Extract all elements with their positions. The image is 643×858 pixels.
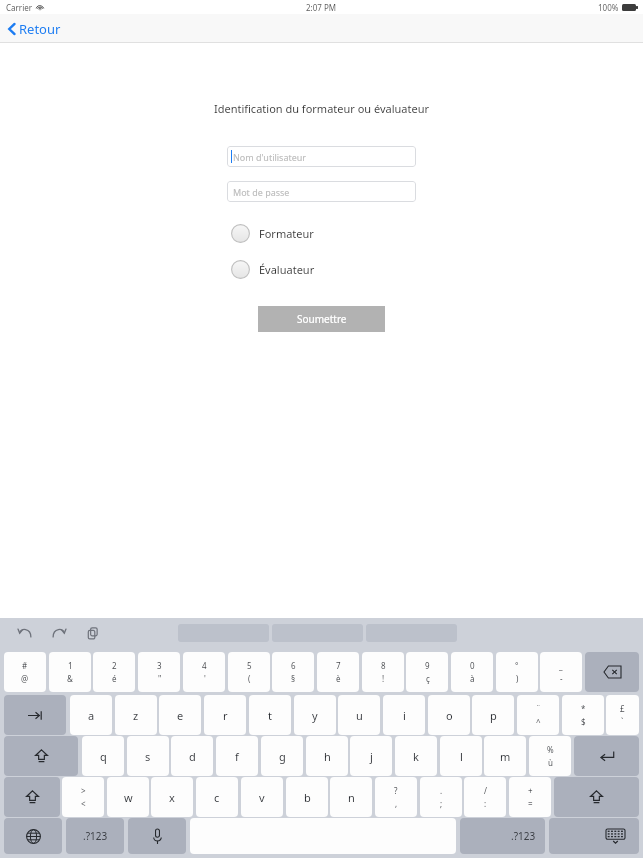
button[interactable]: Undo xyxy=(12,620,38,646)
staticText: + xyxy=(528,785,533,796)
button[interactable]: Hide keyboard xyxy=(549,818,639,854)
button[interactable]: Paste xyxy=(80,620,106,646)
button[interactable]: s xyxy=(127,736,169,776)
button[interactable]: * xyxy=(562,695,604,735)
staticText: i xyxy=(403,708,406,723)
button[interactable]: Tab xyxy=(4,695,66,735)
button[interactable]: 8 xyxy=(362,652,404,692)
button[interactable]: b xyxy=(286,777,328,817)
button[interactable]: 9 xyxy=(406,652,448,692)
button[interactable]: q xyxy=(82,736,124,776)
staticText: : xyxy=(484,798,487,809)
button[interactable]: k xyxy=(395,736,437,776)
button[interactable]: Backspace xyxy=(585,652,639,692)
button[interactable]: v xyxy=(241,777,283,817)
staticText: u xyxy=(356,708,363,723)
staticText: ` xyxy=(621,716,624,727)
staticText: é xyxy=(112,673,117,684)
button[interactable]: Shift xyxy=(4,736,78,776)
button[interactable]: Redo xyxy=(46,620,72,646)
button[interactable]: 0 xyxy=(451,652,493,692)
button[interactable]: ? xyxy=(375,777,417,817)
button[interactable]: ¨ xyxy=(517,695,559,735)
button[interactable]: j xyxy=(350,736,392,776)
staticText: * xyxy=(581,703,586,714)
button[interactable]: l xyxy=(440,736,482,776)
staticText: s xyxy=(145,749,151,764)
button[interactable]: Soumettre xyxy=(258,306,385,332)
staticText: ) xyxy=(516,673,519,684)
button[interactable]: Mot de passe xyxy=(227,181,416,202)
button[interactable]: 5 xyxy=(228,652,270,692)
button[interactable]: % xyxy=(529,736,571,776)
button[interactable]: r xyxy=(204,695,246,735)
button[interactable]: h xyxy=(306,736,348,776)
button[interactable]: Retour xyxy=(4,17,65,41)
staticText: - xyxy=(560,673,563,684)
staticText: n xyxy=(348,790,355,805)
staticText: 2 xyxy=(112,660,117,671)
button[interactable]: d xyxy=(171,736,213,776)
button[interactable]: 3 xyxy=(138,652,180,692)
staticText: ¨ xyxy=(536,703,541,714)
button[interactable]: Évaluateur xyxy=(231,258,315,280)
button[interactable]: Nom d'utilisateur xyxy=(227,146,416,167)
staticText: % xyxy=(547,744,554,755)
button[interactable]: Shift xyxy=(554,777,639,817)
button[interactable]: o xyxy=(428,695,470,735)
button[interactable]: 7 xyxy=(317,652,359,692)
button[interactable]: x xyxy=(151,777,193,817)
button[interactable]: + xyxy=(509,777,551,817)
button[interactable]: .?123 xyxy=(460,818,545,854)
button[interactable]: £ xyxy=(606,695,639,735)
button[interactable]: a xyxy=(70,695,112,735)
button[interactable]: g xyxy=(261,736,303,776)
button[interactable]: .?123 xyxy=(66,818,124,854)
staticText: > xyxy=(81,785,86,796)
staticText: 0 xyxy=(470,660,475,671)
staticText: g xyxy=(279,749,286,764)
staticText: k xyxy=(413,749,419,764)
button[interactable]: n xyxy=(330,777,372,817)
staticText: @ xyxy=(21,673,29,684)
button[interactable]: # xyxy=(4,652,46,692)
button[interactable]: 6 xyxy=(272,652,314,692)
button[interactable]: / xyxy=(464,777,506,817)
staticText: a xyxy=(88,708,95,723)
button[interactable]: 4 xyxy=(183,652,225,692)
staticText: Carrier xyxy=(6,2,33,13)
button[interactable]: y xyxy=(294,695,336,735)
staticText: Soumettre xyxy=(297,312,347,326)
button[interactable]: 1 xyxy=(49,652,91,692)
button[interactable]: i xyxy=(383,695,425,735)
button[interactable]: z xyxy=(115,695,157,735)
button[interactable]: Change keyboard xyxy=(4,818,62,854)
staticText: $ xyxy=(581,716,586,727)
button[interactable]: > xyxy=(62,777,104,817)
staticText: Retour xyxy=(19,20,61,38)
button[interactable]: . xyxy=(420,777,462,817)
button[interactable]: p xyxy=(472,695,514,735)
staticText: ^ xyxy=(536,716,541,727)
button[interactable]: t xyxy=(249,695,291,735)
button[interactable]: Shift xyxy=(4,777,60,817)
button[interactable]: e xyxy=(159,695,201,735)
button[interactable]: _ xyxy=(540,652,582,692)
button[interactable]: m xyxy=(484,736,526,776)
button[interactable]: Dictation xyxy=(128,818,186,854)
button[interactable]: ° xyxy=(496,652,538,692)
button[interactable]: w xyxy=(107,777,149,817)
staticText: e xyxy=(177,708,184,723)
staticText: f xyxy=(235,749,239,764)
staticText: ù xyxy=(548,757,553,768)
button[interactable]: u xyxy=(338,695,380,735)
button[interactable]: f xyxy=(216,736,258,776)
button[interactable]: Return xyxy=(574,736,639,776)
button[interactable]: Formateur xyxy=(231,222,314,244)
button[interactable]: c xyxy=(196,777,238,817)
button[interactable]: 2 xyxy=(93,652,135,692)
